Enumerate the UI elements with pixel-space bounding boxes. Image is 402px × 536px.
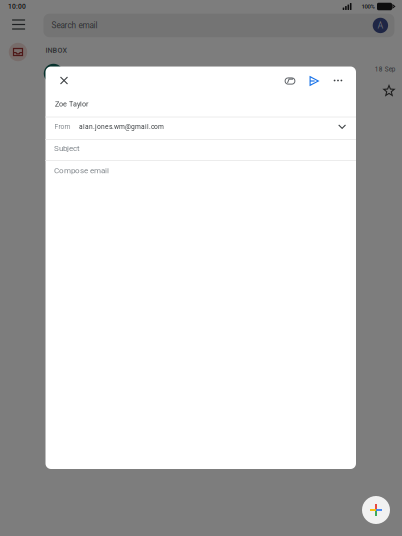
staticText: Compose email [54,166,109,175]
staticText: INBOX [45,46,67,54]
button[interactable]: Compose [362,496,390,524]
staticText: Search email [51,21,97,30]
button[interactable]: Send [303,70,325,92]
staticText: Zoe Taylor [70,66,108,75]
button[interactable]: More options [327,69,349,91]
button[interactable]: Compose email [45,158,356,182]
staticText: From [54,123,70,130]
button[interactable]: From [45,115,356,138]
button[interactable]: Attach file [279,70,301,92]
staticText: 10:00 [8,3,26,10]
button[interactable]: Search email [43,14,394,37]
staticText: A [377,20,383,31]
button[interactable]: Zoe Taylor [45,93,356,115]
staticText: Zoe Taylor [55,100,88,108]
staticText: 100% [361,3,374,10]
staticText: alan.jones.wm@gmail.com [79,123,164,130]
staticText: 18 Sep [375,66,396,73]
button[interactable]: Close [52,68,76,92]
staticText: Subject [54,144,80,153]
button[interactable]: Subject [45,138,356,159]
button[interactable]: Open navigation menu [7,13,31,35]
